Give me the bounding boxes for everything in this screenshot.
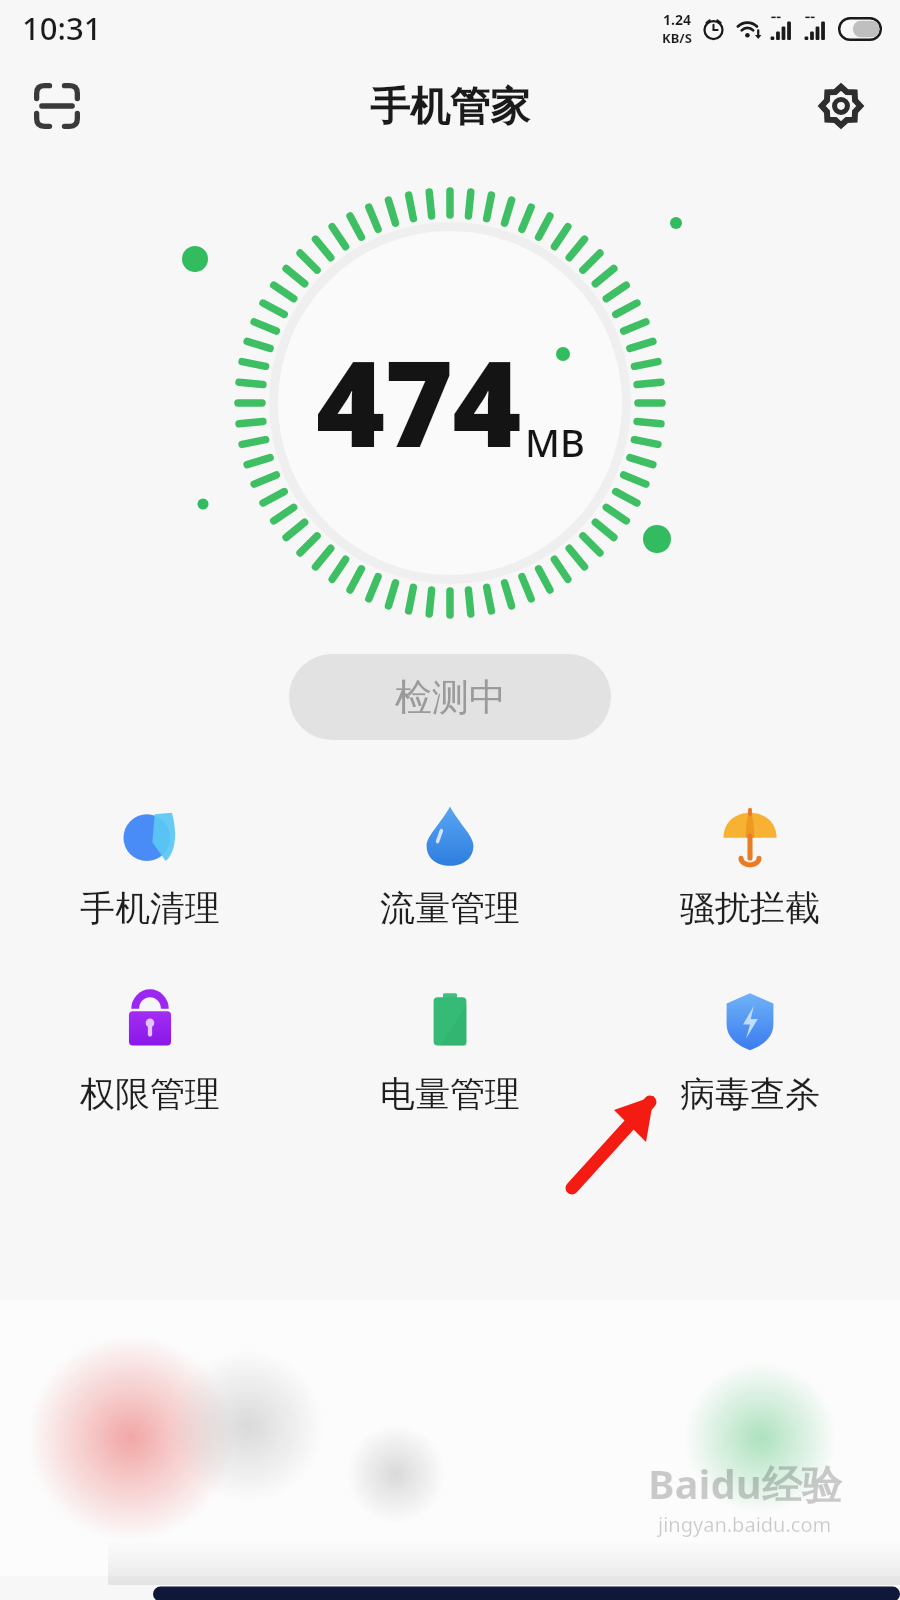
staticText: 手机管家 <box>370 81 530 131</box>
staticText: 病毒查杀 <box>680 1072 820 1116</box>
button[interactable]: 扫一扫 <box>26 75 88 137</box>
button[interactable]: 流量管理 <box>300 788 600 936</box>
staticText: jingyan.baidu.com <box>658 1511 832 1538</box>
staticText: Baidu经验 <box>648 1456 842 1511</box>
staticText: 10:31 <box>22 7 102 49</box>
staticText: 手机清理 <box>80 886 220 930</box>
staticText: 电量管理 <box>380 1072 520 1116</box>
staticText: 474 <box>316 321 521 482</box>
staticText: 检测中 <box>395 674 506 721</box>
button[interactable]: 设置 <box>810 75 872 137</box>
staticText: 骚扰拦截 <box>680 886 820 930</box>
button[interactable]: 权限管理 <box>0 974 300 1122</box>
staticText: KB/S <box>662 29 692 47</box>
staticText: 1.24 <box>663 10 691 29</box>
button[interactable]: 手机清理 <box>0 788 300 936</box>
button[interactable]: 电量管理 <box>300 974 600 1122</box>
staticText: 权限管理 <box>80 1072 220 1116</box>
staticText: MB <box>525 416 585 468</box>
button[interactable]: 骚扰拦截 <box>600 788 900 936</box>
button[interactable]: 病毒查杀 <box>600 974 900 1122</box>
staticText: 流量管理 <box>380 886 520 930</box>
button[interactable]: 检测中 <box>289 654 611 740</box>
